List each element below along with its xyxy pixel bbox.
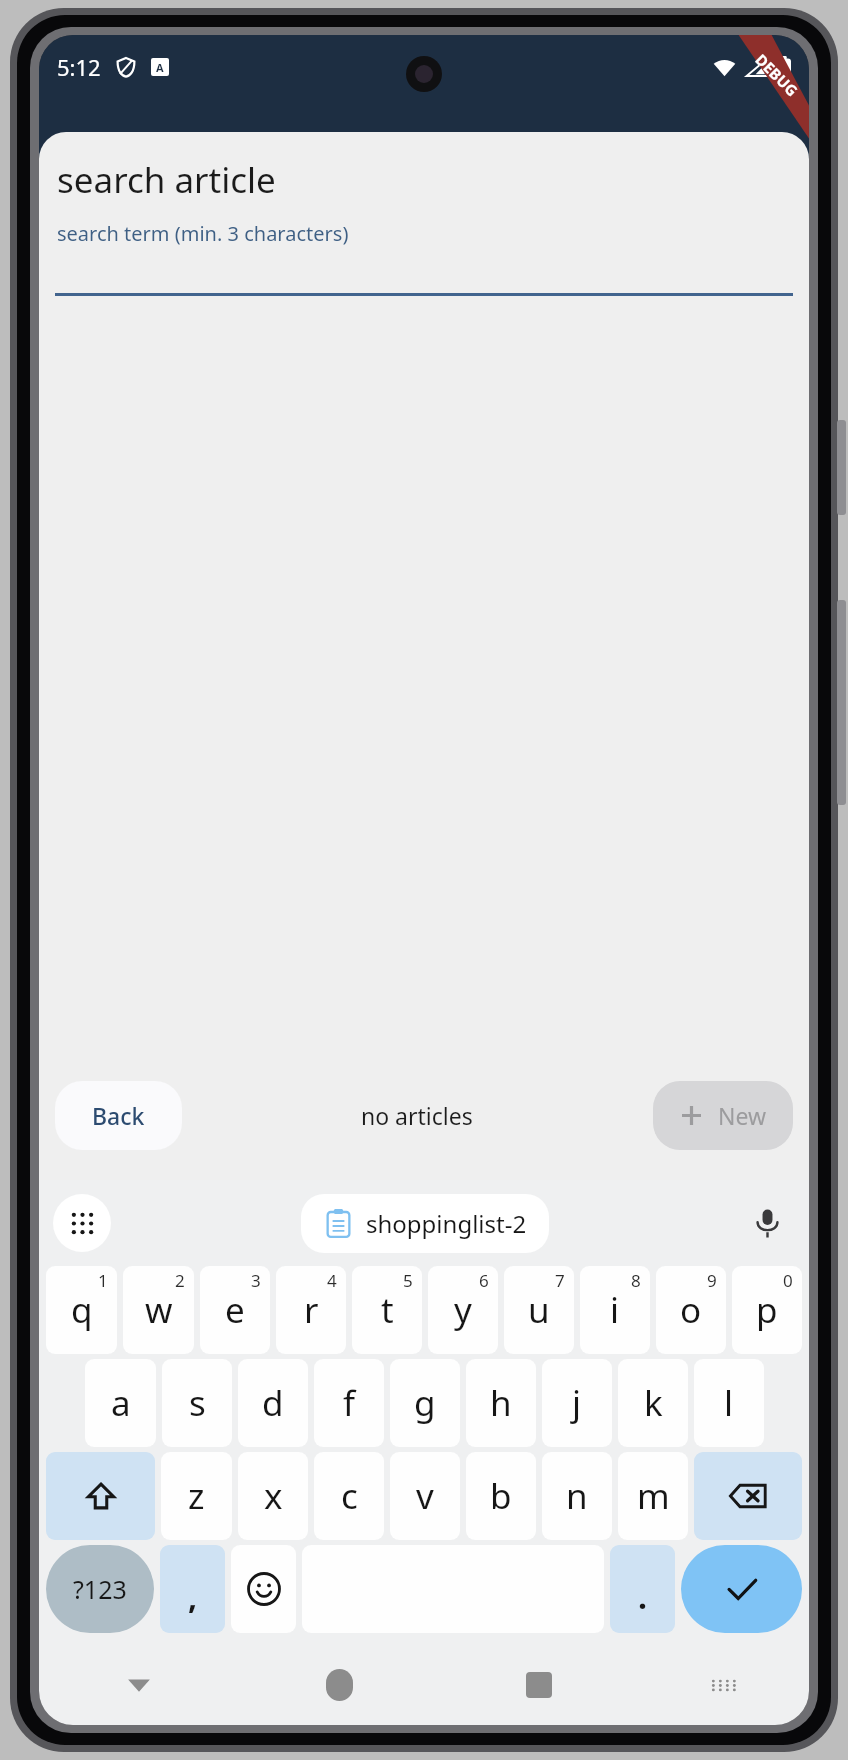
button[interactable]: Shift <box>46 1452 155 1540</box>
staticText: w <box>145 1286 173 1334</box>
staticText: b <box>490 1472 512 1520</box>
staticText: h <box>490 1379 512 1427</box>
staticText: 8 <box>631 1269 641 1292</box>
staticText: y <box>454 1286 472 1334</box>
button[interactable]: m <box>618 1452 688 1540</box>
button[interactable]: q <box>46 1266 117 1354</box>
button[interactable]: h <box>466 1359 536 1447</box>
staticText: Back <box>92 1100 145 1131</box>
button[interactable]: g <box>390 1359 460 1447</box>
staticText: search term (min. 3 characters) <box>57 220 349 247</box>
staticText: 1 <box>98 1269 108 1292</box>
staticText: u <box>528 1286 550 1334</box>
staticText: 9 <box>707 1269 717 1292</box>
staticText: k <box>644 1379 663 1427</box>
staticText: 2 <box>175 1269 185 1292</box>
button[interactable]: f <box>314 1359 384 1447</box>
button[interactable]: k <box>618 1359 688 1447</box>
button[interactable]: a <box>85 1359 156 1447</box>
button[interactable]: e <box>200 1266 270 1354</box>
staticText: s <box>189 1379 206 1427</box>
button[interactable]: Voice input <box>739 1195 795 1251</box>
button[interactable]: r <box>276 1266 346 1354</box>
staticText: f <box>343 1379 356 1427</box>
button[interactable]: Enter <box>681 1545 802 1633</box>
button[interactable]: j <box>542 1359 612 1447</box>
button[interactable]: Backspace <box>694 1452 802 1540</box>
staticText: i <box>610 1286 620 1334</box>
staticText: p <box>756 1286 778 1334</box>
button[interactable]: y <box>428 1266 498 1354</box>
button[interactable]: t <box>352 1266 422 1354</box>
button[interactable]: Switch keyboard layout <box>53 1194 111 1252</box>
staticText: 4 <box>327 1269 337 1292</box>
button[interactable]: New <box>653 1081 793 1150</box>
button[interactable]: Back <box>55 1081 182 1150</box>
staticText: 5:12 <box>57 52 101 82</box>
button[interactable]: i <box>580 1266 650 1354</box>
button[interactable]: u <box>504 1266 574 1354</box>
button[interactable]: ?123 <box>46 1545 154 1633</box>
staticText: q <box>71 1286 93 1334</box>
button[interactable]: Emoji <box>231 1545 296 1633</box>
staticText: v <box>416 1472 434 1520</box>
button[interactable]: o <box>656 1266 726 1354</box>
staticText: e <box>225 1286 245 1334</box>
button[interactable]: , <box>160 1545 225 1633</box>
button[interactable]: Hide keyboard <box>39 1645 239 1725</box>
staticText: c <box>341 1472 358 1520</box>
staticText: . <box>638 1575 647 1619</box>
button[interactable]: c <box>314 1452 384 1540</box>
button[interactable]: . <box>610 1545 675 1633</box>
staticText: l <box>724 1379 734 1427</box>
staticText: r <box>304 1286 319 1334</box>
staticText: g <box>414 1379 436 1427</box>
staticText: 7 <box>555 1269 565 1292</box>
staticText: New <box>718 1100 767 1131</box>
button[interactable]: d <box>238 1359 308 1447</box>
staticText: x <box>264 1472 283 1520</box>
staticText: shoppinglist-2 <box>366 1207 527 1240</box>
button[interactable]: x <box>238 1452 308 1540</box>
staticText: a <box>111 1379 131 1427</box>
button[interactable]: Home <box>239 1645 439 1725</box>
staticText: A <box>156 60 164 75</box>
staticText: no articles <box>361 1100 473 1131</box>
staticText: t <box>381 1286 394 1334</box>
button[interactable]: w <box>123 1266 194 1354</box>
button[interactable]: Change keyboard <box>639 1645 809 1725</box>
button[interactable]: b <box>466 1452 536 1540</box>
staticText: 6 <box>479 1269 489 1292</box>
staticText: ?123 <box>73 1572 127 1606</box>
staticText: DEBUG <box>751 49 802 100</box>
staticText: search article <box>57 156 276 204</box>
staticText: j <box>572 1379 582 1427</box>
button[interactable]: z <box>161 1452 232 1540</box>
button[interactable]: v <box>390 1452 460 1540</box>
staticText: 3 <box>251 1269 261 1292</box>
button[interactable]: s <box>162 1359 232 1447</box>
staticText: m <box>637 1472 670 1520</box>
staticText: n <box>566 1472 588 1520</box>
button[interactable]: shoppinglist-2 <box>301 1194 549 1253</box>
staticText: o <box>680 1286 702 1334</box>
staticText: d <box>262 1379 284 1427</box>
staticText: 0 <box>783 1269 793 1292</box>
staticText: , <box>188 1575 198 1619</box>
button[interactable]: n <box>542 1452 612 1540</box>
button[interactable]: l <box>694 1359 764 1447</box>
button[interactable]: Recent apps <box>439 1645 639 1725</box>
button[interactable]: p <box>732 1266 802 1354</box>
staticText: 5 <box>403 1269 413 1292</box>
staticText: z <box>188 1472 205 1520</box>
